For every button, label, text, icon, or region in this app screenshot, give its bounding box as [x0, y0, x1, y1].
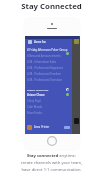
button[interactable]: Acme Inc — [28, 39, 71, 45]
staticText: Colin Woods — [27, 105, 43, 109]
staticText: # New and Announcements — [27, 54, 61, 58]
staticText: # 08 - Information Sales — [27, 60, 57, 64]
button[interactable]: # Friday Afternoon Poker Group — [27, 47, 71, 53]
button[interactable]: Chery Pujol — [27, 98, 71, 104]
button[interactable]: # 08 - Professional Happiness — [27, 65, 71, 71]
staticText: DIRECT MESSAGES — [27, 88, 49, 91]
button[interactable]: Info — [66, 88, 69, 91]
button[interactable]: # 08 - Professional Freedom — [27, 71, 71, 77]
staticText: Ariane Chase — [27, 93, 45, 97]
staticText: Anna Printer — [34, 125, 50, 129]
button[interactable]: # 08 - Professional Transition — [27, 77, 71, 83]
button[interactable]: Colin Woods — [27, 104, 71, 110]
staticText: Acme Inc — [34, 40, 46, 44]
button[interactable]: Brian Franks — [27, 110, 71, 116]
button[interactable]: # 08 - Information Sales — [27, 59, 71, 65]
staticText: Chery Pujol — [27, 99, 41, 103]
button[interactable]: Ariane Chase — [27, 92, 71, 98]
staticText: # Friday Afternoon Poker Group — [27, 48, 68, 52]
staticText: Stay connected anytime: create channels … — [4, 153, 99, 172]
button[interactable]: # New and Announcements — [27, 53, 71, 59]
button[interactable]: Anna Printer — [27, 122, 72, 132]
staticText: # 08 - Professional Freedom — [27, 72, 62, 76]
staticText: # 08 - Professional Happiness — [27, 66, 63, 70]
staticText: # 08 - Professional Transition — [27, 78, 63, 82]
staticText: Brian Franks — [27, 111, 43, 115]
staticText: Stay Connected — [0, 1, 103, 12]
